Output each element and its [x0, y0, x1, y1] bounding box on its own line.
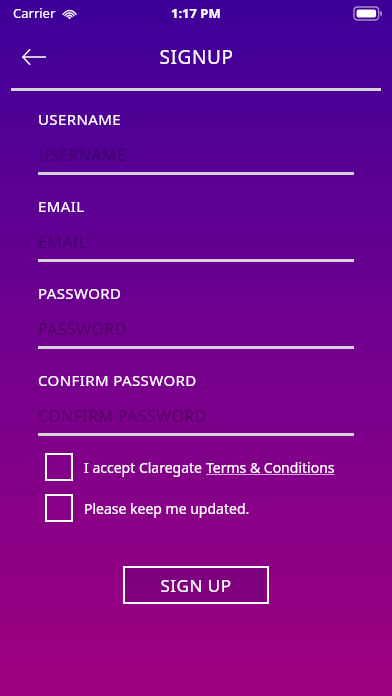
staticText: CONFIRM PASSWORD: [38, 405, 207, 427]
staticText: EMAIL: [38, 231, 88, 253]
staticText: CONFIRM PASSWORD: [38, 370, 197, 390]
staticText: Carrier: [13, 4, 56, 22]
staticText: 1:17 PM: [171, 4, 221, 22]
staticText: SIGN UP: [160, 574, 232, 597]
button[interactable]: CONFIRM PASSWORD: [38, 370, 354, 436]
staticText: EMAIL: [38, 196, 85, 216]
button[interactable]: Please keep me updated.: [45, 494, 372, 522]
staticText: I accept Claregate: [84, 458, 206, 477]
staticText: USERNAME: [38, 144, 127, 166]
button[interactable]: PASSWORD: [38, 283, 354, 349]
button[interactable]: I accept Claregate: [45, 453, 372, 481]
staticText: PASSWORD: [38, 283, 122, 303]
button[interactable]: Terms & Conditions: [206, 458, 335, 477]
staticText: Please keep me updated.: [84, 499, 250, 518]
staticText: PASSWORD: [38, 318, 127, 340]
staticText: SIGNUP: [159, 44, 234, 70]
button[interactable]: USERNAME: [38, 109, 354, 175]
button[interactable]: Back: [12, 35, 56, 79]
button[interactable]: EMAIL: [38, 196, 354, 262]
staticText: USERNAME: [38, 109, 122, 129]
button[interactable]: SIGN UP: [123, 566, 269, 604]
